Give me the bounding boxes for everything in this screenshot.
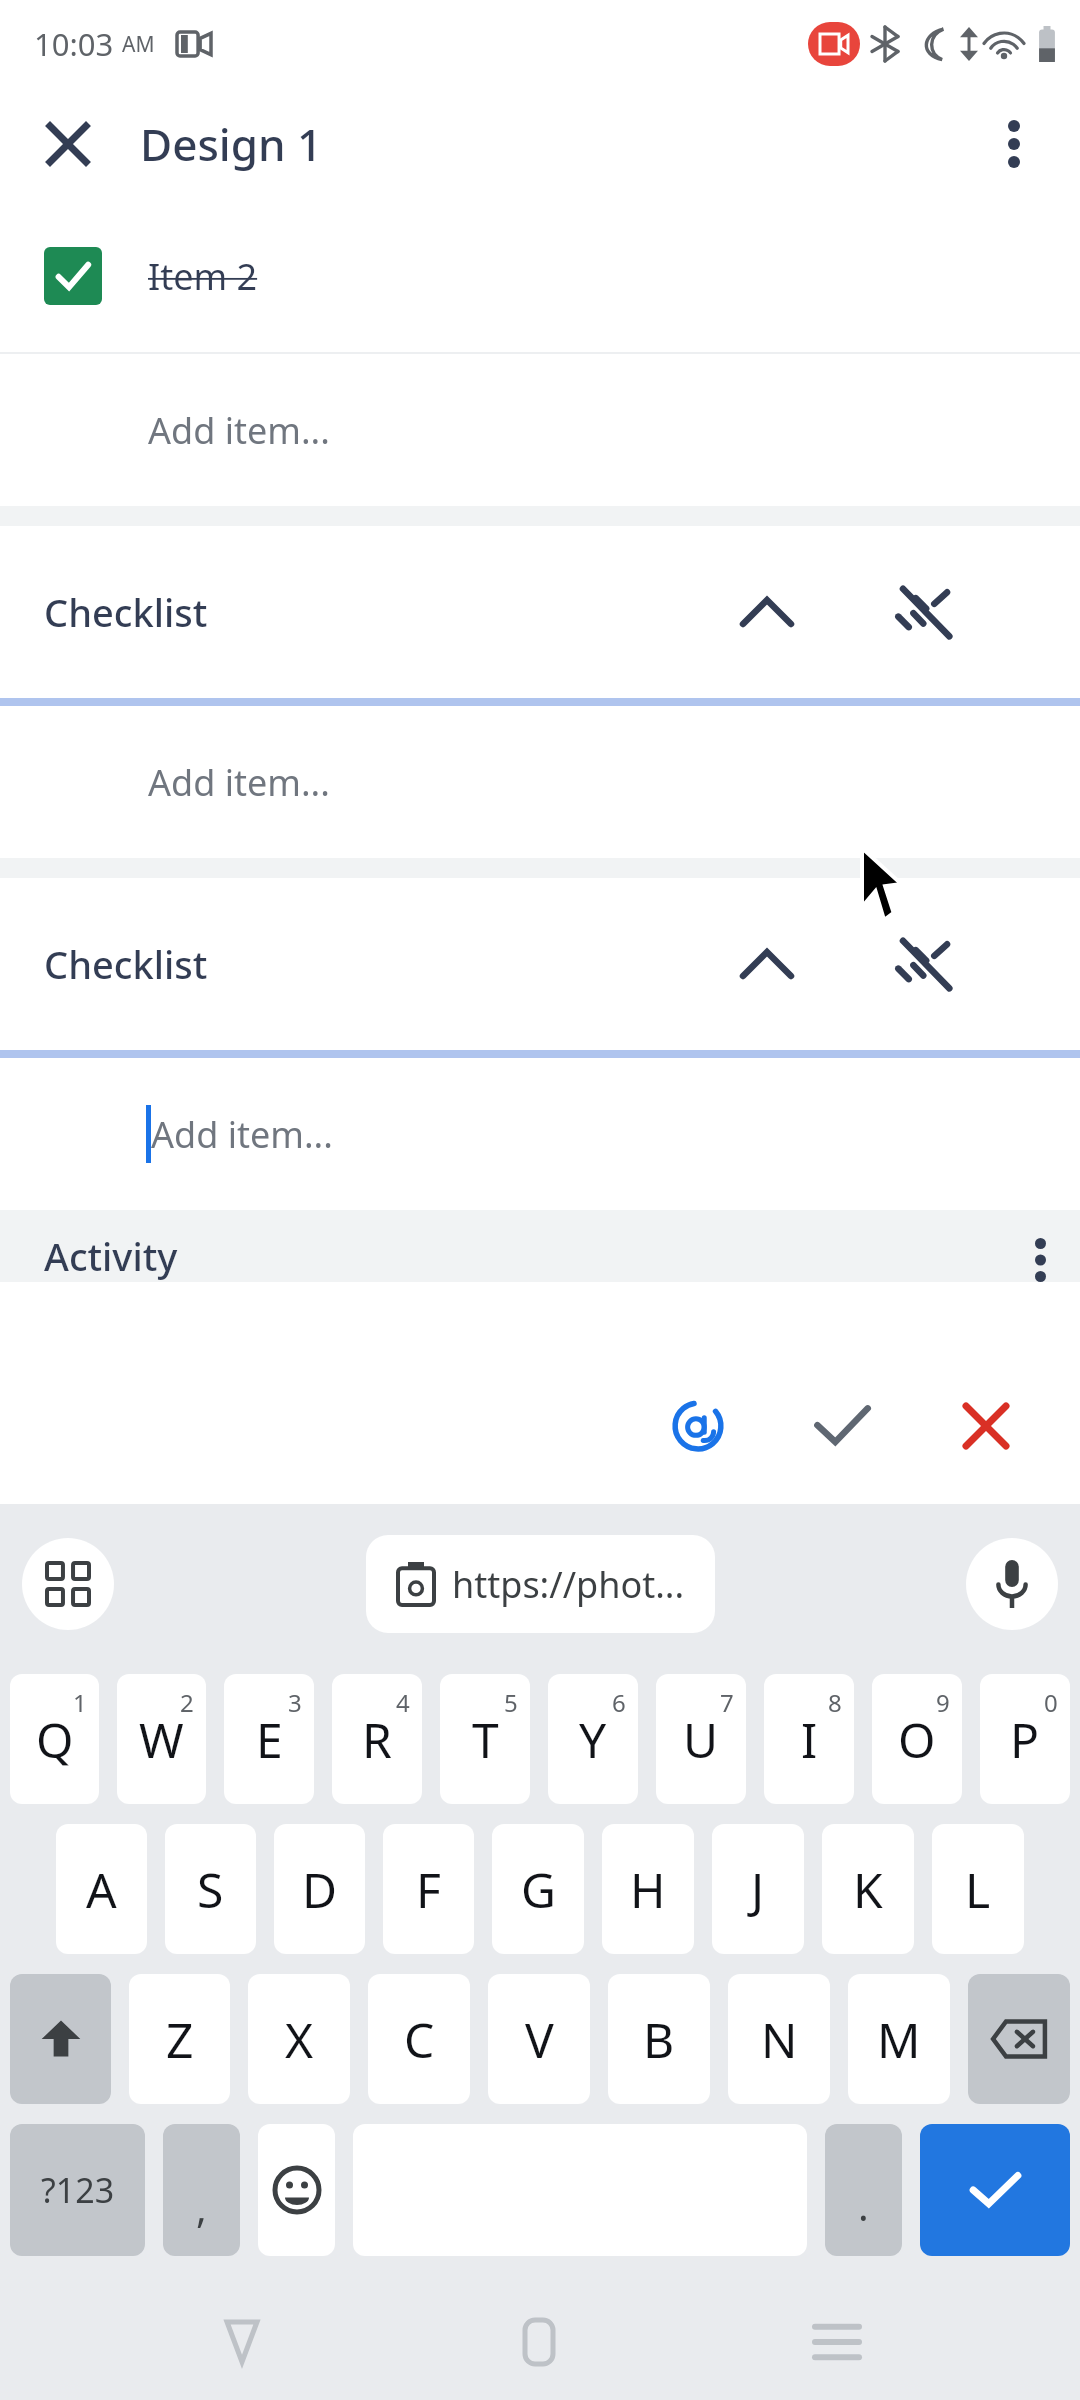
button[interactable]: Home xyxy=(484,2287,594,2397)
button[interactable]: Back xyxy=(187,2287,297,2397)
button[interactable]: R xyxy=(332,1674,422,1804)
button[interactable]: Cancel xyxy=(928,1368,1044,1484)
button[interactable]: Emoji xyxy=(258,2124,335,2256)
staticText: L xyxy=(965,1857,991,1922)
staticText: 5 xyxy=(504,1686,518,1719)
button[interactable]: Shift xyxy=(10,1974,111,2104)
staticText: K xyxy=(853,1857,883,1922)
button[interactable]: F xyxy=(383,1824,474,1954)
button[interactable]: O xyxy=(872,1674,962,1804)
button[interactable]: . xyxy=(825,2124,902,2256)
button[interactable]: V xyxy=(488,1974,590,2104)
staticText: 6 xyxy=(612,1686,626,1719)
staticText: AM xyxy=(122,30,155,59)
button[interactable]: B xyxy=(608,1974,710,2104)
staticText: E xyxy=(256,1707,283,1772)
staticText: 1 xyxy=(73,1686,87,1719)
button[interactable]: Voice input xyxy=(966,1538,1058,1630)
staticText: Q xyxy=(36,1707,74,1772)
staticText: Y xyxy=(579,1707,607,1772)
staticText: Add item... xyxy=(151,1110,333,1159)
button[interactable]: I xyxy=(764,1674,854,1804)
button[interactable]: G xyxy=(492,1824,584,1954)
button[interactable]: H xyxy=(602,1824,694,1954)
staticText: N xyxy=(761,2007,798,2072)
staticText: 8 xyxy=(828,1686,842,1719)
staticText: Add item... xyxy=(148,758,330,807)
staticText: 0 xyxy=(1044,1686,1058,1719)
button[interactable]: A xyxy=(56,1824,147,1954)
staticText: Activity xyxy=(44,1230,178,1282)
button[interactable]: W xyxy=(117,1674,206,1804)
staticText: O xyxy=(898,1707,936,1772)
button[interactable]: Confirm xyxy=(784,1368,900,1484)
staticText: I xyxy=(801,1707,818,1772)
staticText: 3 xyxy=(288,1686,302,1719)
button[interactable]: Collapse xyxy=(712,557,822,667)
staticText: 10:03 xyxy=(34,23,114,65)
button[interactable]: K xyxy=(822,1824,914,1954)
button[interactable]: Keyboard options xyxy=(22,1538,114,1630)
button[interactable]: Recent apps xyxy=(782,2287,892,2397)
staticText: U xyxy=(683,1707,719,1772)
button[interactable]: Mention xyxy=(640,1368,756,1484)
button[interactable]: E xyxy=(224,1674,314,1804)
button[interactable]: Z xyxy=(129,1974,230,2104)
button[interactable]: https://phot... xyxy=(366,1535,715,1633)
staticText: ?123 xyxy=(41,2167,115,2213)
button[interactable]: U xyxy=(656,1674,746,1804)
staticText: T xyxy=(472,1707,499,1772)
button[interactable]: Item 2 xyxy=(0,200,1080,352)
staticText: , xyxy=(196,2180,207,2234)
button[interactable]: C xyxy=(368,1974,470,2104)
button[interactable]: Add item... xyxy=(0,706,1080,858)
button[interactable]: S xyxy=(165,1824,256,1954)
staticText: Item 2 xyxy=(148,252,258,301)
button[interactable]: T xyxy=(440,1674,530,1804)
staticText: . xyxy=(858,2178,869,2232)
button[interactable]: Collapse xyxy=(712,909,822,1019)
staticText: D xyxy=(302,1857,338,1922)
button[interactable]: Activity options xyxy=(1035,1238,1046,1282)
staticText: C xyxy=(404,2007,435,2072)
staticText: G xyxy=(521,1857,556,1922)
button[interactable]: Enter xyxy=(920,2124,1070,2256)
button[interactable]: J xyxy=(712,1824,804,1954)
button[interactable]: Q xyxy=(10,1674,99,1804)
staticText: Checklist xyxy=(44,938,208,990)
button[interactable]: D xyxy=(274,1824,365,1954)
staticText: Z xyxy=(166,2007,194,2072)
staticText: B xyxy=(643,2007,675,2072)
button[interactable]: Y xyxy=(548,1674,638,1804)
staticText: Add item... xyxy=(148,406,330,455)
staticText: S xyxy=(197,1857,224,1922)
button[interactable]: , xyxy=(163,2124,240,2256)
staticText: V xyxy=(525,2007,554,2072)
staticText: P xyxy=(1010,1707,1040,1772)
staticText: R xyxy=(362,1707,392,1772)
staticText: J xyxy=(751,1857,765,1922)
staticText: 9 xyxy=(936,1686,950,1719)
staticText: A xyxy=(86,1857,117,1922)
button[interactable]: L xyxy=(932,1824,1024,1954)
button[interactable]: M xyxy=(848,1974,950,2104)
staticText: M xyxy=(877,2007,921,2072)
button[interactable]: Hide checked items xyxy=(870,909,980,1019)
staticText: https://phot... xyxy=(452,1560,685,1609)
button[interactable]: ?123 xyxy=(10,2124,145,2256)
button[interactable]: P xyxy=(980,1674,1070,1804)
button[interactable]: More options xyxy=(966,96,1062,192)
staticText: 2 xyxy=(180,1686,194,1719)
button[interactable]: Add item... xyxy=(0,354,1080,506)
staticText: W xyxy=(139,1707,184,1772)
button[interactable]: Backspace xyxy=(968,1974,1070,2104)
button[interactable]: Close xyxy=(20,96,116,192)
button[interactable]: Hide checked items xyxy=(870,557,980,667)
button[interactable]: Add item... xyxy=(0,1058,1080,1210)
staticText: H xyxy=(630,1857,666,1922)
staticText: Checklist xyxy=(44,586,208,638)
staticText: F xyxy=(416,1857,441,1922)
button[interactable]: X xyxy=(248,1974,350,2104)
button[interactable]: N xyxy=(728,1974,830,2104)
